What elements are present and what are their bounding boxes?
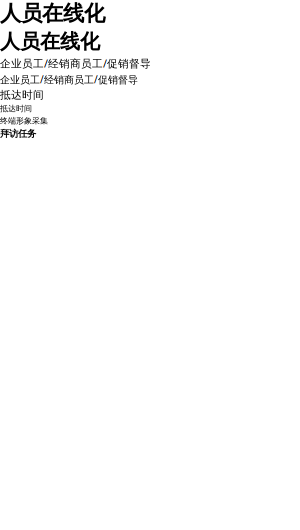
staticText: 人员在线化	[0, 29, 100, 54]
staticText: 抵达时间	[0, 88, 44, 102]
staticText: 终端形象采集	[0, 116, 48, 126]
staticText: 企业员工/经销商员工/促销督导	[0, 73, 138, 86]
staticText: 人员在线化	[0, 0, 105, 27]
staticText: 抵达时间	[0, 104, 32, 114]
staticText: 拜访任务	[0, 128, 36, 140]
staticText: 企业员工/经销商员工/促销督导	[0, 56, 151, 71]
